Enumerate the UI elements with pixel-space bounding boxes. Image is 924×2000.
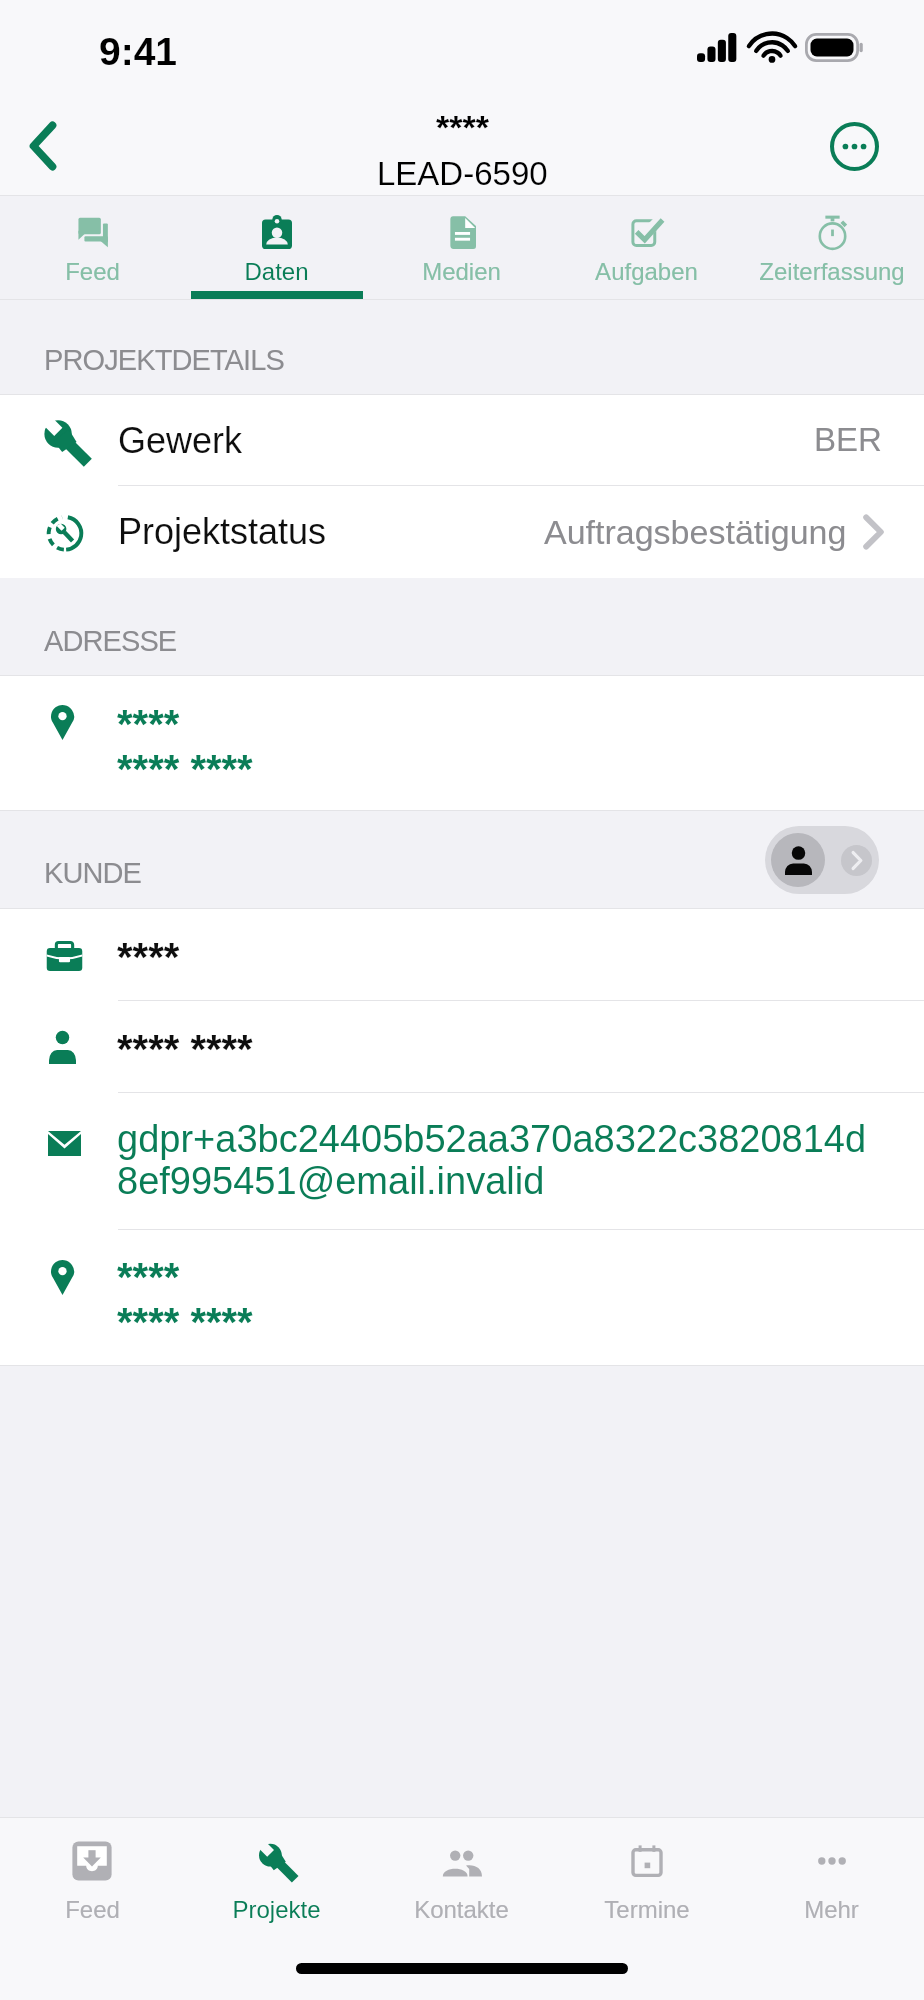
- staticText: ****: [117, 935, 180, 980]
- staticText: Medien: [422, 258, 501, 285]
- staticText: ****: [436, 108, 489, 146]
- button[interactable]: ****: [0, 1230, 924, 1365]
- staticText: Auftragsbestätigung: [544, 513, 847, 551]
- staticText: Aufgaben: [595, 258, 698, 285]
- staticText: 8ef995451@email.invalid: [117, 1160, 545, 1202]
- button[interactable]: ****: [0, 909, 924, 1001]
- staticText: Projekte: [232, 1896, 321, 1923]
- staticText: gdpr+a3bc24405b52aa370a8322c3820814d: [117, 1118, 867, 1160]
- button[interactable]: Kontakt auswählen: [765, 826, 879, 894]
- button[interactable]: Feed: [0, 196, 184, 299]
- staticText: LEAD-6590: [377, 155, 548, 192]
- staticText: Termine: [604, 1896, 690, 1923]
- button[interactable]: Feed: [0, 1818, 184, 1944]
- staticText: BER: [814, 421, 882, 458]
- button[interactable]: Zurück: [4, 107, 82, 185]
- staticText: Feed: [65, 258, 120, 285]
- staticText: ****: [117, 1255, 180, 1300]
- staticText: 9:41: [99, 30, 178, 74]
- staticText: **** ****: [117, 747, 253, 792]
- staticText: PROJEKTDETAILS: [44, 344, 284, 376]
- staticText: Feed: [65, 1896, 120, 1923]
- button[interactable]: **** ****: [0, 1001, 924, 1093]
- button[interactable]: Daten: [184, 196, 369, 299]
- button[interactable]: Mehr Optionen: [818, 110, 890, 182]
- button[interactable]: Zeiterfassung: [739, 196, 924, 299]
- button[interactable]: Termine: [554, 1818, 739, 1944]
- staticText: **** ****: [117, 1027, 253, 1072]
- staticText: Daten: [244, 258, 309, 285]
- staticText: Mehr: [804, 1896, 859, 1923]
- staticText: KUNDE: [44, 857, 142, 889]
- button[interactable]: Medien: [369, 196, 554, 299]
- staticText: ADRESSE: [44, 625, 177, 657]
- button[interactable]: Projektstatus: [0, 486, 924, 578]
- staticText: ****: [117, 702, 180, 747]
- button[interactable]: Gewerk: [0, 395, 924, 486]
- button[interactable]: Mehr: [739, 1818, 924, 1944]
- button[interactable]: Aufgaben: [554, 196, 739, 299]
- button[interactable]: ****: [0, 676, 924, 810]
- staticText: Gewerk: [118, 420, 243, 460]
- staticText: **** ****: [117, 1300, 253, 1345]
- staticText: Zeiterfassung: [759, 258, 905, 285]
- staticText: Kontakte: [414, 1896, 509, 1923]
- button[interactable]: gdpr+a3bc24405b52aa370a8322c3820814d: [0, 1093, 924, 1230]
- button[interactable]: Projekte: [184, 1818, 369, 1944]
- button[interactable]: Kontakte: [369, 1818, 554, 1944]
- staticText: Projektstatus: [118, 511, 327, 551]
